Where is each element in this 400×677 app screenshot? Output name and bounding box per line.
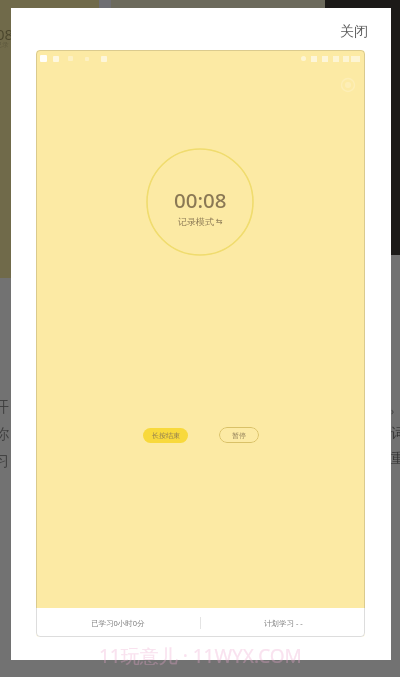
button[interactable]: 计划学习 - - bbox=[201, 608, 365, 637]
staticText: 记录模式 bbox=[178, 216, 214, 227]
button[interactable]: 暂停 bbox=[219, 427, 259, 443]
button[interactable]: 已学习0小时0分 bbox=[36, 608, 200, 637]
staticText: 11玩意儿 · 11WYX.COM bbox=[99, 643, 302, 669]
staticText: 重 bbox=[391, 450, 400, 468]
staticText: 计划学习 - - bbox=[264, 618, 303, 628]
staticText: 记录 bbox=[0, 40, 9, 49]
staticText: 已学习0小时0分 bbox=[91, 618, 145, 628]
button[interactable]: 长按结束 bbox=[143, 428, 188, 443]
button[interactable]: Settings bbox=[340, 77, 356, 93]
staticText: 开 bbox=[0, 398, 9, 417]
staticText: 词 bbox=[391, 425, 400, 443]
staticText: 08 bbox=[0, 24, 14, 44]
staticText: 关闭 bbox=[340, 23, 368, 41]
button[interactable]: 关闭 bbox=[330, 18, 378, 46]
staticText: 暂停 bbox=[232, 431, 246, 440]
staticText: › bbox=[391, 404, 395, 418]
staticText: 长按结束 bbox=[152, 431, 180, 440]
staticText: ⇆ bbox=[216, 217, 223, 226]
staticText: 你 bbox=[0, 425, 9, 444]
staticText: 00:08 bbox=[174, 186, 227, 214]
staticText: 习 bbox=[0, 452, 9, 471]
